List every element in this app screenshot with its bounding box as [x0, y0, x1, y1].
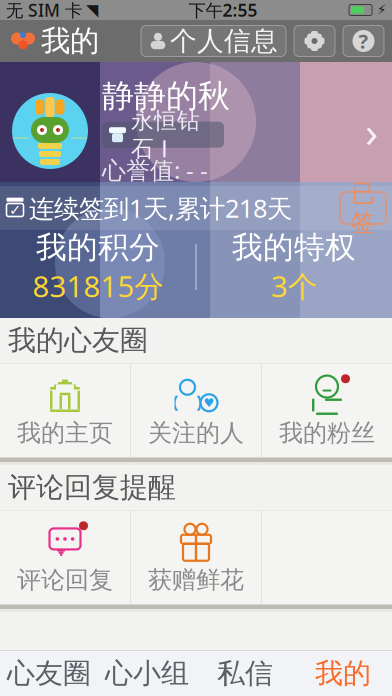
staticText: 我的心友圈: [8, 323, 148, 358]
button[interactable]: 私信: [196, 651, 294, 696]
staticText: 永恒钻石 Ⅰ: [131, 107, 200, 163]
button[interactable]: ✓: [0, 186, 392, 230]
staticText: ⚡︎: [377, 2, 386, 17]
staticText: ✓: [9, 202, 21, 218]
staticText: 我的粉丝: [279, 418, 375, 448]
staticText: 获赠鲜花: [148, 565, 244, 595]
staticText: 评论回复: [17, 565, 113, 595]
staticText: 831815分: [32, 266, 163, 305]
button[interactable]: 评论回复: [0, 511, 130, 604]
staticText: 私信: [217, 656, 273, 691]
staticText: 评论回复提醒: [8, 470, 176, 505]
staticText: 心小组: [105, 656, 189, 691]
staticText: 无 SIM 卡: [6, 0, 82, 21]
button[interactable]: 个人信息: [141, 25, 286, 56]
staticText: 心誉值: - -: [102, 154, 208, 186]
staticText: 个人信息: [170, 25, 278, 57]
button[interactable]: 我的: [8, 23, 99, 59]
staticText: ♥: [203, 396, 214, 410]
button[interactable]: 静静的秋: [0, 76, 392, 186]
button[interactable]: 我的粉丝: [262, 364, 392, 457]
button[interactable]: 我的: [294, 651, 392, 696]
button[interactable]: 我的积分: [0, 230, 195, 304]
button[interactable]: 我的主页: [0, 364, 130, 457]
staticText: 我的: [315, 656, 371, 691]
staticText: ◥: [86, 1, 98, 19]
staticText: ?: [358, 28, 368, 54]
staticText: 关注的人: [148, 418, 244, 448]
staticText: 我的积分: [36, 229, 160, 266]
button[interactable]: 帮助: [343, 25, 384, 56]
button[interactable]: ♥: [131, 364, 261, 457]
button[interactable]: 心小组: [98, 651, 196, 696]
button[interactable]: 心友圈: [0, 651, 98, 696]
staticText: 心友圈: [7, 656, 91, 691]
button[interactable]: 我的特权: [196, 230, 391, 304]
staticText: 连续签到1天,累计218天: [29, 191, 292, 225]
staticText: 3个: [271, 266, 317, 305]
staticText: 已签: [351, 178, 375, 237]
staticText: 我的: [41, 23, 99, 59]
staticText: 下午2:55: [188, 0, 257, 21]
staticText: 静静的秋: [102, 76, 230, 116]
staticText: ›: [365, 103, 378, 159]
button[interactable]: 获赠鲜花: [131, 511, 261, 604]
staticText: 我的特权: [232, 229, 356, 266]
button[interactable]: 设置: [294, 25, 335, 56]
staticText: 我的主页: [17, 418, 113, 448]
